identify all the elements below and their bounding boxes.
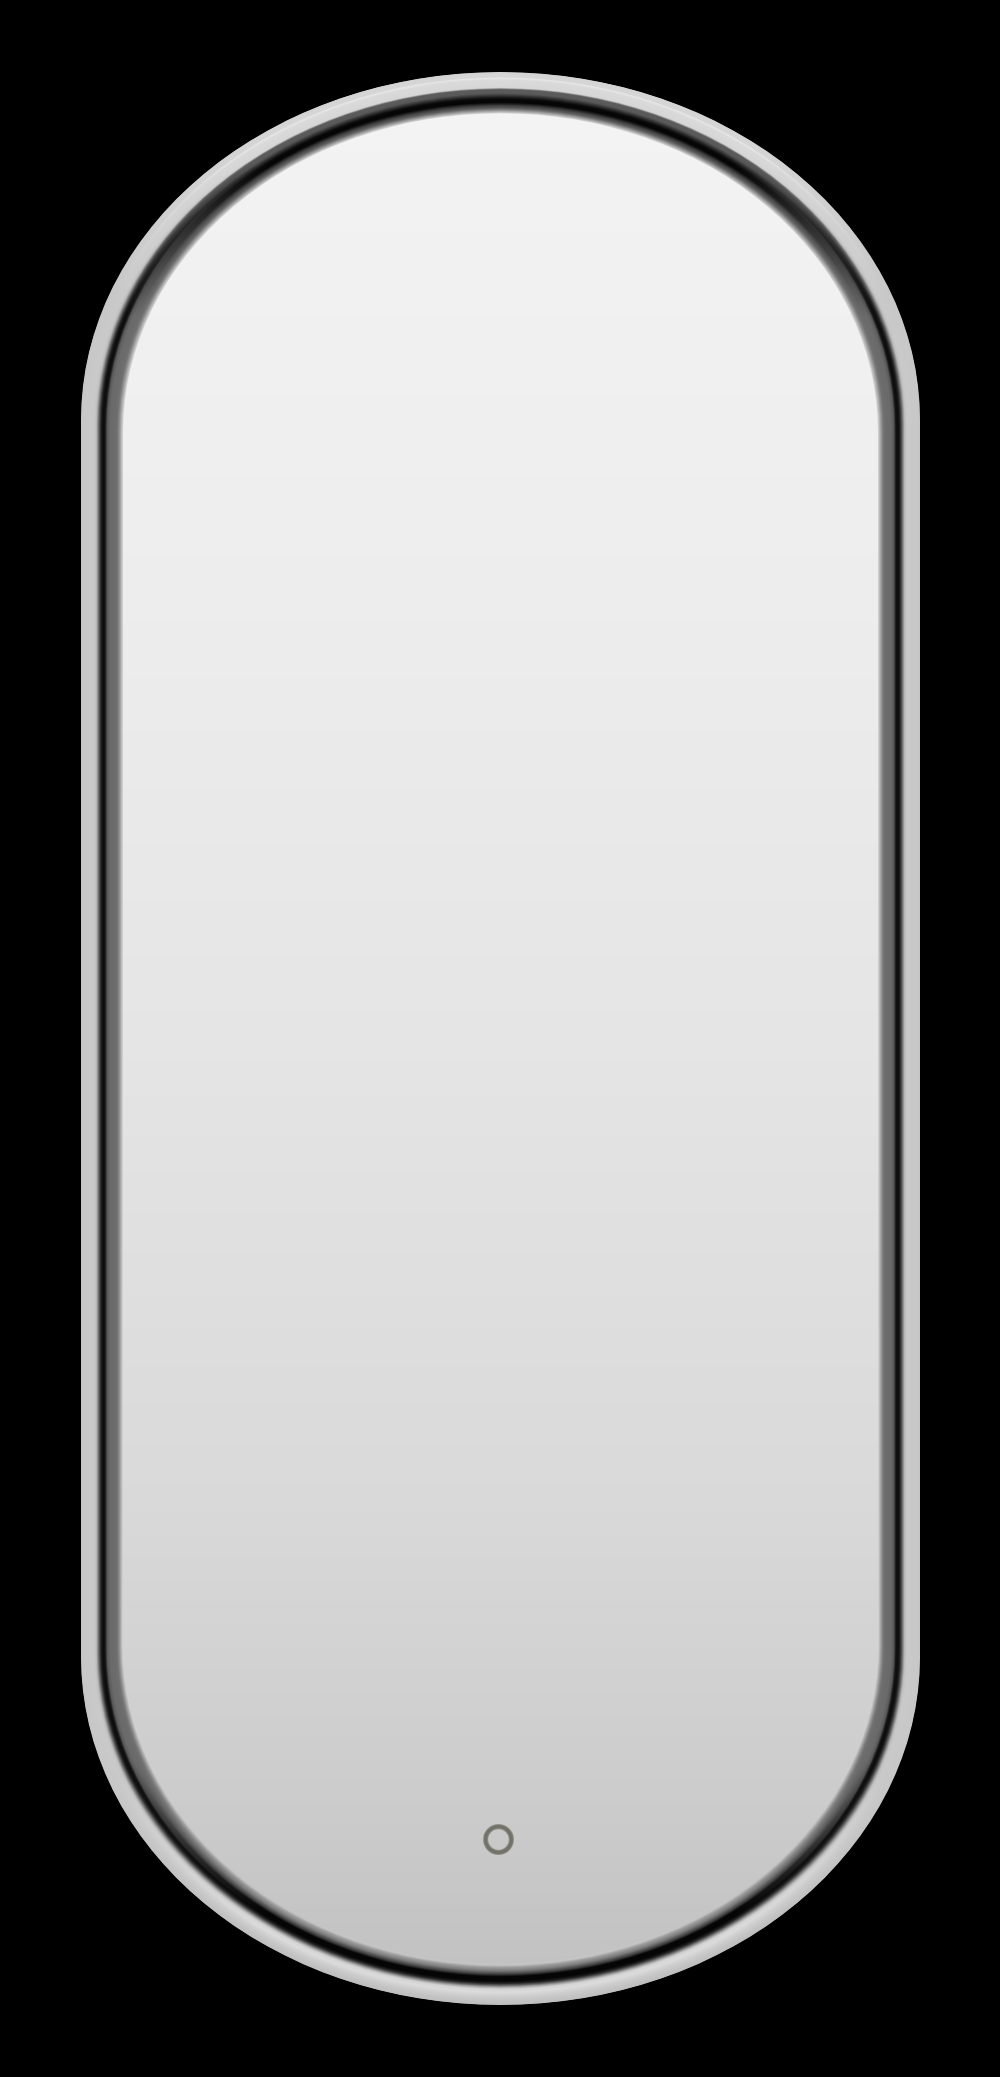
- button[interactable]: Device screen: [0, 0, 1000, 2077]
